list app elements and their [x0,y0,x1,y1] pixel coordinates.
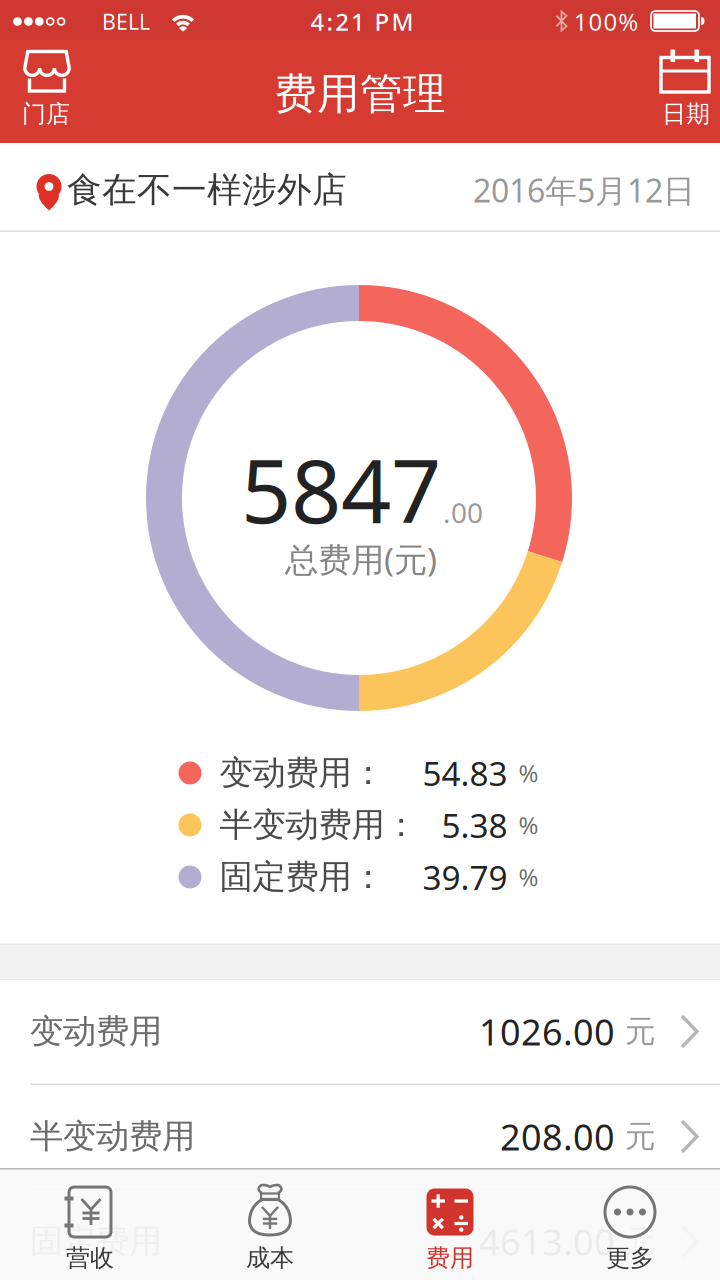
staticText: 半变动费用 [30,1116,195,1157]
staticText: 元 [625,1013,656,1050]
staticText: 固定费用 [30,1221,162,1262]
button[interactable]: 更多 [540,1168,720,1280]
button[interactable]: 门店 [0,40,94,143]
staticText: 半变动费用： [219,804,417,845]
button[interactable]: 成本 [180,1168,360,1280]
button[interactable]: 营收 [0,1168,180,1280]
staticText: % [518,809,538,841]
staticText: 39.79 [422,855,507,899]
staticText: .00 [443,494,483,531]
staticText: 4:21 PM [311,6,413,37]
staticText: BELL [102,7,150,36]
staticText: 门店 [22,99,70,129]
staticText: 食在不一样涉外店 [67,169,347,211]
button[interactable]: 固定费用 [0,1190,720,1280]
staticText: 日期 [662,99,710,129]
staticText: 元 [625,1223,656,1260]
staticText: % [518,757,538,789]
staticText: 费用 [426,1243,474,1273]
staticText: 2016年5月12日 [473,169,695,211]
staticText: 元 [625,1118,656,1155]
button[interactable]: 食在不一样涉外店 [0,143,720,232]
staticText: 变动费用 [30,1011,162,1052]
staticText: 1026.00 [479,1008,615,1055]
staticText: 更多 [606,1243,654,1273]
staticText: 总费用(元) [285,537,437,581]
staticText: 208.00 [500,1113,615,1160]
staticText: 固定费用： [219,856,384,897]
staticText: 费用管理 [274,68,446,120]
staticText: 100% [574,6,638,37]
button[interactable]: 日期 [610,40,720,143]
staticText: 成本 [246,1243,294,1273]
staticText: 4613.00 [479,1218,615,1265]
button[interactable]: 变动费用 [0,980,720,1083]
staticText: 54.83 [422,751,507,795]
staticText: 5847 [241,431,441,547]
staticText: % [518,861,538,893]
staticText: 营收 [66,1243,114,1273]
button[interactable]: 半变动费用 [0,1085,720,1188]
staticText: 5.38 [441,803,507,847]
button[interactable]: 费用 [360,1168,540,1280]
staticText: 变动费用： [219,752,384,793]
